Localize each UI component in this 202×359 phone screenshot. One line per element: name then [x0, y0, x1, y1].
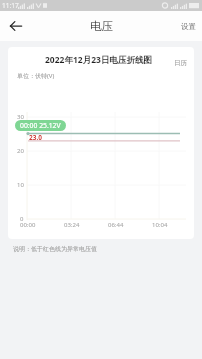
staticText: 30: [17, 113, 24, 121]
staticText: 电压: [90, 19, 113, 33]
staticText: 10: [17, 181, 24, 189]
staticText: 11:17: [2, 1, 19, 10]
staticText: 日历: [174, 59, 187, 67]
staticText: 06:44: [108, 221, 124, 229]
staticText: 设置: [181, 22, 196, 31]
staticText: 10:04: [152, 221, 168, 229]
button[interactable]: 日历: [166, 53, 194, 73]
staticText: 00:00 25.12V: [20, 121, 61, 130]
button[interactable]: Back: [2, 12, 30, 40]
staticText: 23.0: [29, 133, 42, 142]
staticText: 0: [20, 215, 24, 223]
staticText: 03:24: [64, 221, 80, 229]
staticText: 单位：伏特(V): [17, 72, 55, 80]
staticText: 2022年12月23日电压折线图: [45, 54, 152, 66]
staticText: 说明：低于红色线为异常电压值: [13, 245, 97, 253]
button[interactable]: 设置: [174, 15, 202, 37]
staticText: 20: [17, 147, 24, 155]
staticText: 00:00: [20, 221, 36, 229]
